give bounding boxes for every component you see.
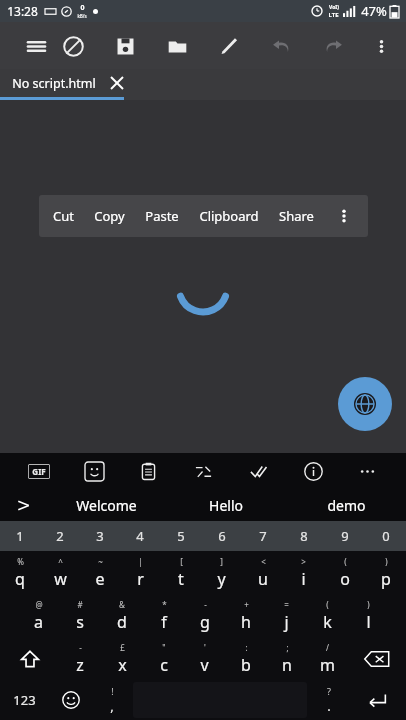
button[interactable]: Welcome xyxy=(46,489,166,521)
button[interactable]: ~ xyxy=(80,551,120,594)
staticText: r xyxy=(137,568,144,590)
staticText: Cut xyxy=(53,207,74,225)
button[interactable]: @ xyxy=(17,594,59,637)
button[interactable]: Clipboard xyxy=(132,455,164,487)
button[interactable]: Copy xyxy=(94,207,125,225)
button[interactable]: 4 xyxy=(120,521,160,551)
button[interactable]: Backspace xyxy=(348,637,406,680)
button[interactable]: Spell check xyxy=(242,455,274,487)
staticText: z xyxy=(76,654,84,676)
button[interactable]: * xyxy=(143,594,184,637)
staticText: VoI) xyxy=(329,4,339,11)
button[interactable]: 1 xyxy=(0,521,40,551)
staticText: l xyxy=(366,611,371,633)
button[interactable]: demo xyxy=(286,489,406,521)
button[interactable]: ^ xyxy=(40,551,80,594)
button[interactable]: ] xyxy=(201,551,242,594)
staticText: n xyxy=(282,654,292,676)
button[interactable]: Translate xyxy=(187,455,219,487)
staticText: 6 xyxy=(218,527,226,545)
button[interactable]: 2 xyxy=(40,521,80,551)
button[interactable]: % xyxy=(0,551,40,594)
button[interactable]: Open folder xyxy=(160,29,194,63)
button[interactable]: - xyxy=(184,594,225,637)
button[interactable]: Stickers xyxy=(78,455,110,487)
button[interactable]: : xyxy=(225,637,266,680)
button[interactable]: Share xyxy=(279,207,314,225)
button[interactable]: ; xyxy=(266,637,307,680)
button[interactable]: No script.html xyxy=(0,69,136,97)
staticText: ) xyxy=(367,599,370,610)
button[interactable]: Close tab xyxy=(108,74,126,92)
button[interactable]: 7 xyxy=(242,521,283,551)
staticText: " xyxy=(162,642,166,653)
button[interactable]: - xyxy=(59,637,101,680)
staticText: £ xyxy=(120,642,125,653)
staticText: [ xyxy=(180,556,183,567)
button[interactable]: Clipboard xyxy=(199,207,259,225)
button[interactable]: Hello xyxy=(166,489,286,521)
button[interactable]: 8 xyxy=(283,521,324,551)
button[interactable]: > xyxy=(283,551,324,594)
button[interactable]: 6 xyxy=(201,521,242,551)
button[interactable]: Enter xyxy=(348,680,406,720)
button[interactable]: & xyxy=(101,594,143,637)
button[interactable]: Ad blocker xyxy=(56,29,90,63)
staticText: v xyxy=(200,654,209,676)
staticText: s xyxy=(76,611,84,633)
button[interactable]: / xyxy=(307,637,348,680)
button[interactable]: Collapse suggestions xyxy=(0,489,46,521)
button[interactable]: 123 xyxy=(0,680,49,720)
button[interactable]: ' xyxy=(184,637,225,680)
staticText: p xyxy=(381,568,391,590)
staticText: 7 xyxy=(259,527,267,545)
button[interactable]: More options xyxy=(364,29,398,63)
button[interactable]: Emoji xyxy=(49,680,92,720)
button[interactable]: Shift xyxy=(0,637,59,680)
button[interactable]: Menu xyxy=(19,29,53,63)
button[interactable]: + xyxy=(225,594,266,637)
staticText: ^ xyxy=(58,556,63,567)
button[interactable]: Edit xyxy=(212,29,246,63)
button[interactable]: ( xyxy=(307,594,348,637)
staticText: ; xyxy=(286,642,289,653)
button[interactable]: Info xyxy=(297,455,329,487)
button[interactable]: # xyxy=(59,594,101,637)
button[interactable]: = xyxy=(266,594,307,637)
staticText: ] xyxy=(220,556,223,567)
button[interactable]: ) xyxy=(348,594,389,637)
button[interactable]: More xyxy=(351,455,383,487)
button[interactable]: 5 xyxy=(160,521,201,551)
button[interactable]: ( xyxy=(324,551,365,594)
staticText: Share xyxy=(279,207,314,225)
staticText: Clipboard xyxy=(199,207,259,225)
staticText: - xyxy=(204,599,207,610)
button[interactable]: " xyxy=(143,637,184,680)
button[interactable]: | xyxy=(120,551,160,594)
staticText: * xyxy=(162,599,167,610)
button[interactable]: ) xyxy=(365,551,406,594)
button[interactable]: Open in browser xyxy=(338,377,392,431)
button[interactable]: 0 xyxy=(365,521,406,551)
button[interactable]: [ xyxy=(160,551,201,594)
button[interactable]: GIF xyxy=(23,455,55,487)
button[interactable]: More menu options xyxy=(334,206,354,226)
button[interactable]: Cut xyxy=(53,207,74,225)
button[interactable]: Undo xyxy=(264,29,298,63)
staticText: f xyxy=(161,611,167,633)
staticText: 0 xyxy=(80,3,85,13)
button[interactable]: ! xyxy=(92,680,131,720)
button[interactable]: < xyxy=(242,551,283,594)
button[interactable]: £ xyxy=(101,637,143,680)
button[interactable]: Paste xyxy=(145,207,179,225)
button[interactable]: 9 xyxy=(324,521,365,551)
staticText: w xyxy=(54,568,67,590)
button[interactable]: Save xyxy=(108,29,142,63)
staticText: u xyxy=(258,568,268,590)
staticText: ~ xyxy=(98,556,103,567)
button[interactable]: 3 xyxy=(80,521,120,551)
staticText: 123 xyxy=(13,691,36,709)
button[interactable]: Redo xyxy=(316,29,350,63)
button[interactable]: ? xyxy=(309,680,348,720)
